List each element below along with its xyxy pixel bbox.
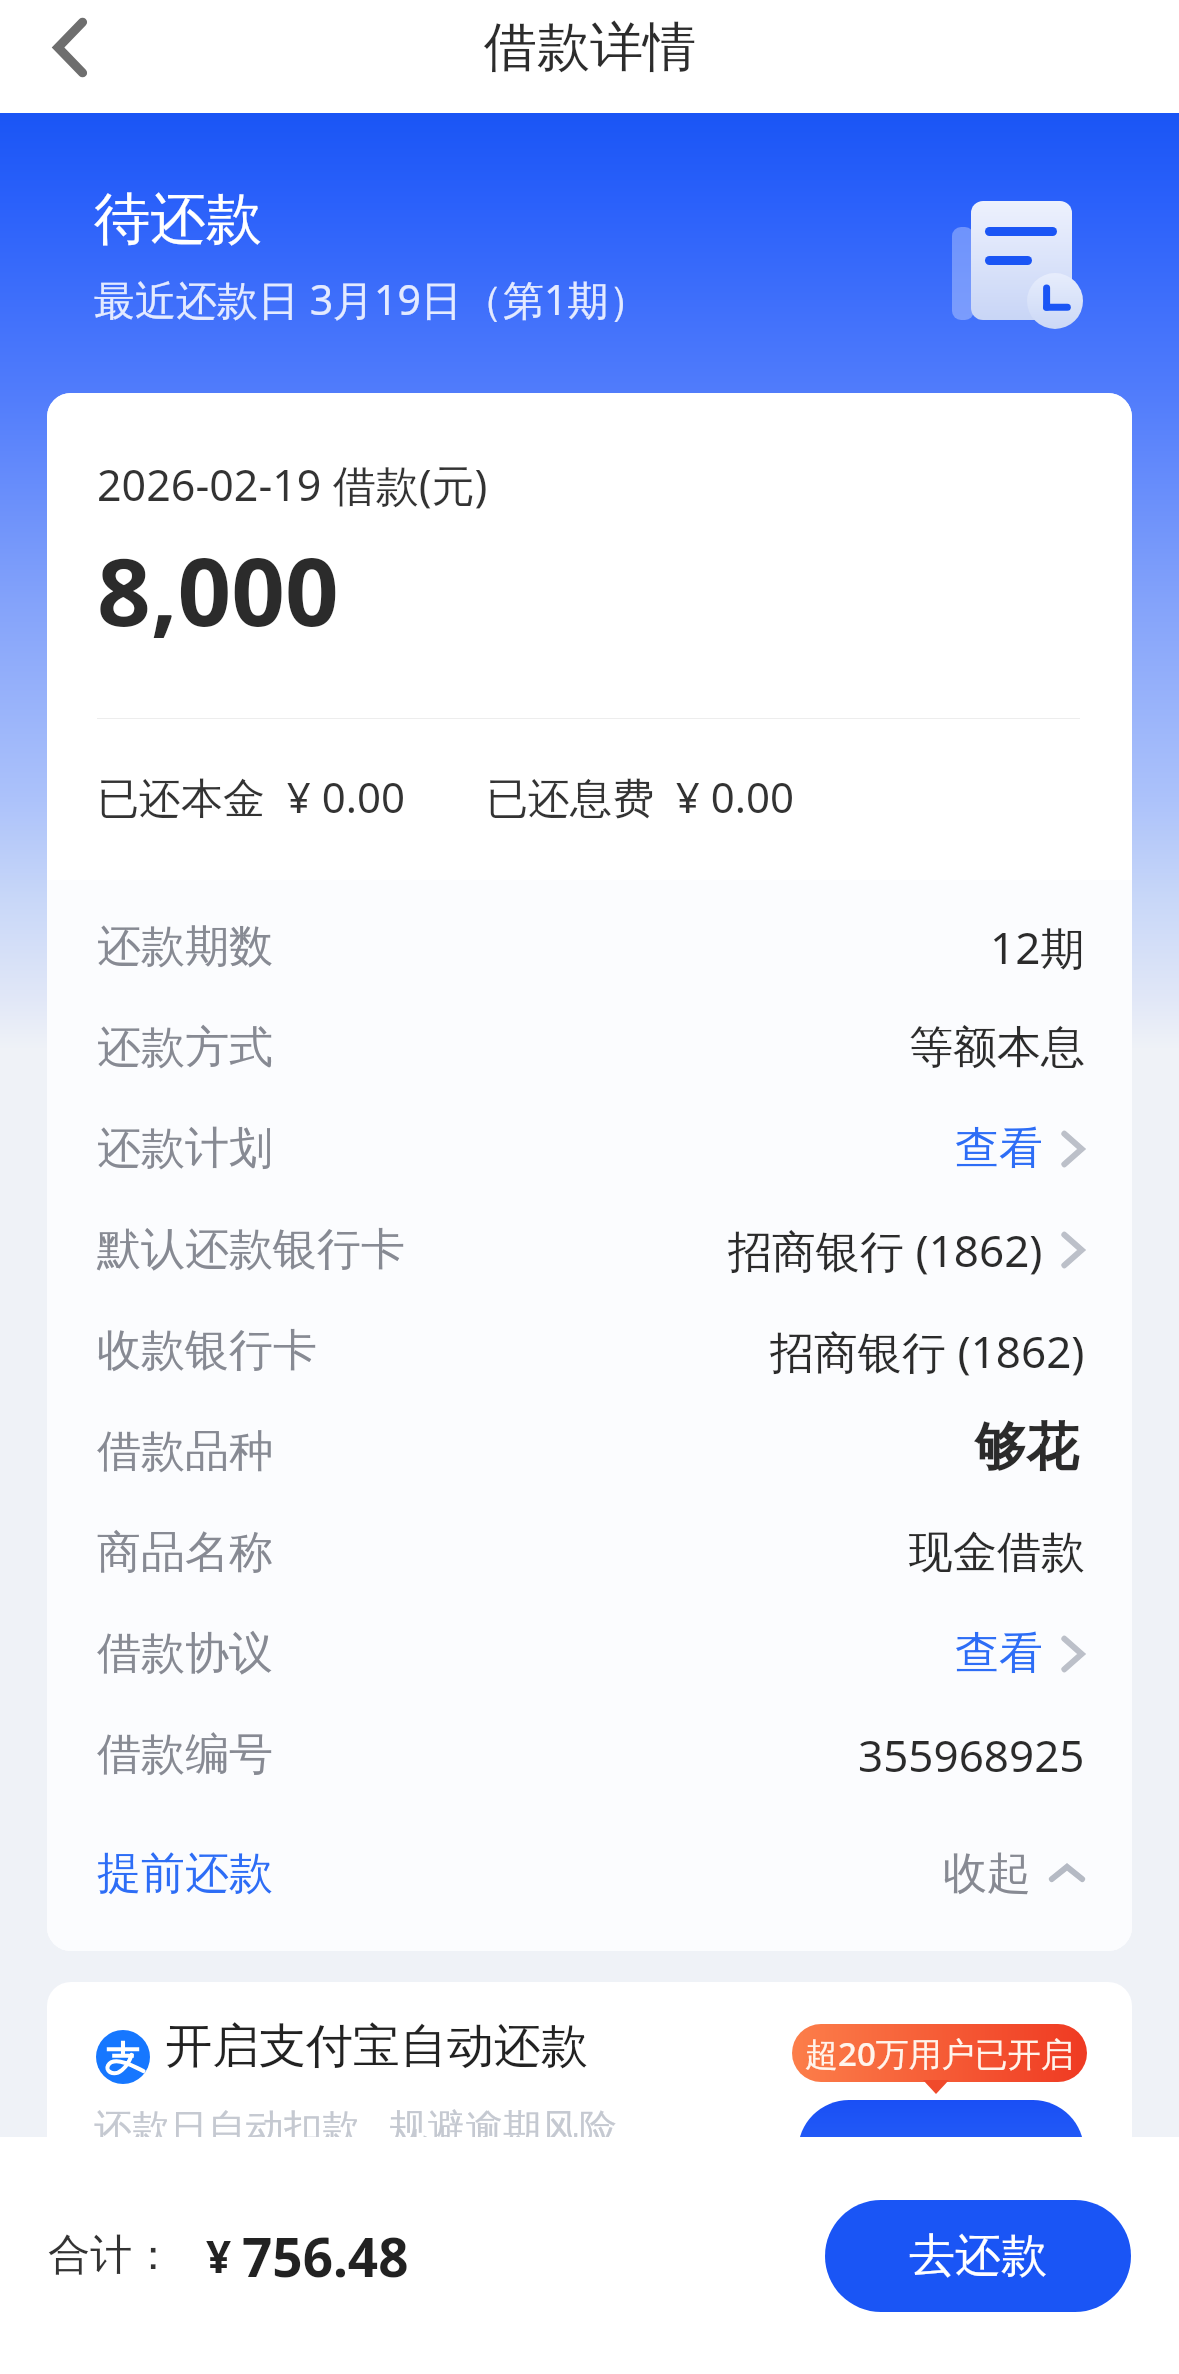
button[interactable]: 还款方式 [97,997,1085,1098]
staticText: 12期 [990,917,1085,977]
staticText: 开启支付宝自动还款 [165,2017,588,2076]
staticText: 商品名称 [97,1525,273,1580]
staticText: 已还本金 ¥ 0.00 [97,768,406,825]
staticText: 还款日自动扣款 规避逾期风险 [94,2100,617,2152]
button[interactable]: 收起 [943,1805,1085,1942]
staticText: 收起 [943,1846,1031,1901]
staticText: 待还款 [94,184,262,255]
staticText: 查看 [955,1626,1043,1681]
staticText: 还款方式 [97,1020,273,1075]
button[interactable]: 收款银行卡 [97,1300,1085,1401]
button[interactable]: 去还款 [825,2200,1131,2312]
button[interactable]: 还款计划 [97,1098,1085,1199]
staticText: 等额本息 [909,1020,1085,1075]
staticText: 借款协议 [97,1626,273,1681]
button[interactable]: 借款协议 [97,1603,1085,1704]
staticText: 招商银行 (1862) [770,1321,1085,1381]
staticText: 提前还款 [97,1846,273,1901]
staticText: 还款期数 [97,919,273,974]
staticText: 收款银行卡 [97,1323,317,1378]
button[interactable]: Back [16,0,124,95]
staticText: 还款计划 [97,1121,273,1176]
staticText: 默认还款银行卡 [97,1222,405,1277]
button[interactable]: 默认还款银行卡 [97,1199,1085,1300]
button[interactable]: 借款编号 [97,1704,1085,1805]
button[interactable]: 提前还款 [97,1805,273,1942]
staticText: 借款编号 [97,1727,273,1782]
staticText: 去还款 [909,2227,1047,2285]
staticText: 借款详情 [484,14,696,81]
staticText: 现金借款 [909,1525,1085,1580]
staticText: 查看 [955,1121,1043,1176]
staticText: 8,000 [97,526,339,654]
staticText: 已还息费 ¥ 0.00 [486,768,795,825]
button[interactable]: 借款品种 [97,1401,1085,1502]
staticText: 合计： [48,2229,174,2282]
staticText: 2026-02-19 借款(元) [97,455,488,514]
staticText: 756.48 [242,2220,409,2292]
button[interactable]: 开启支付宝自动还款 [47,1982,1132,2202]
staticText: 借款品种 [97,1424,273,1479]
staticText: 招商银行 (1862) [728,1220,1043,1280]
staticText: 超20万用户已开启 [805,2031,1074,2076]
button[interactable]: 还款期数 [97,896,1085,997]
button[interactable]: 商品名称 [97,1502,1085,1603]
staticText: 够花 [974,1415,1078,1481]
staticText: 355968925 [858,1725,1085,1785]
staticText: 最近还款日 3月19日（第1期） [94,271,650,327]
staticText: ¥ [206,2226,232,2286]
